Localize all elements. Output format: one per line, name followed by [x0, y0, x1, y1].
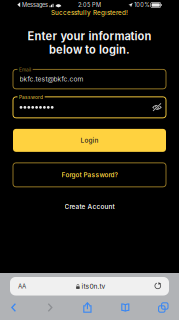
button[interactable]: Back [7, 299, 20, 316]
staticText: Login [80, 136, 98, 144]
staticText: Password [19, 94, 43, 100]
button[interactable]: Forward [43, 299, 57, 316]
staticText: bkfc.test@bkfc.com [19, 75, 83, 83]
button[interactable]: Login [13, 129, 166, 152]
staticText: below to login. [49, 43, 130, 56]
button[interactable]: Tabs [156, 300, 171, 315]
staticText: Successfully Registered! [51, 9, 128, 17]
button[interactable]: Reload [152, 279, 164, 293]
staticText: AA [18, 282, 26, 290]
button[interactable]: Page settings [15, 279, 29, 293]
staticText: its0n.tv [81, 282, 105, 290]
button[interactable]: Create Account [56, 199, 122, 215]
staticText: Create Account [64, 203, 114, 211]
button[interactable]: Bookmarks [118, 300, 133, 315]
staticText: Enter your information [27, 30, 151, 43]
staticText: 100% [134, 2, 149, 8]
staticText: Forgot Password? [61, 171, 117, 179]
staticText: 2:05 PM [78, 2, 101, 8]
staticText: Email [19, 67, 31, 73]
button[interactable]: Share [80, 299, 95, 316]
staticText: Messages [22, 2, 48, 8]
button[interactable]: Forgot Password? [13, 163, 166, 187]
